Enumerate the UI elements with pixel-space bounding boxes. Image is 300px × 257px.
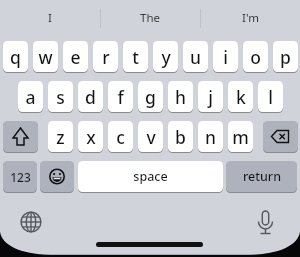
button[interactable]: return	[226, 161, 297, 192]
button[interactable]: I'm	[200, 0, 300, 35]
button[interactable]	[251, 207, 280, 238]
staticText: r	[102, 45, 110, 69]
staticText: j	[208, 85, 213, 109]
button[interactable]: o	[243, 41, 268, 72]
staticText: I'm	[242, 10, 259, 26]
button[interactable]: k	[228, 81, 253, 112]
staticText: i	[223, 45, 228, 69]
staticText: x	[86, 125, 96, 149]
button[interactable]: r	[93, 41, 118, 72]
staticText: c	[116, 125, 125, 149]
staticText: e	[70, 45, 81, 69]
staticText: a	[25, 85, 36, 109]
button[interactable]: c	[108, 121, 133, 152]
staticText: n	[205, 125, 216, 149]
button[interactable]: x	[78, 121, 103, 152]
button[interactable]: l	[258, 81, 283, 112]
button[interactable]: e	[63, 41, 88, 72]
button[interactable]	[17, 208, 45, 236]
staticText: y	[161, 45, 171, 69]
button[interactable]: b	[168, 121, 193, 152]
button[interactable]: v	[138, 121, 163, 152]
staticText: o	[250, 45, 261, 69]
button[interactable]: f	[108, 81, 133, 112]
staticText: b	[175, 125, 186, 149]
button[interactable]: g	[138, 81, 163, 112]
staticText: f	[117, 85, 124, 109]
staticText: space	[133, 168, 168, 185]
staticText: l	[268, 85, 273, 109]
button[interactable]: h	[168, 81, 193, 112]
button[interactable]: d	[78, 81, 103, 112]
button[interactable]: w	[33, 41, 58, 72]
button[interactable]: z	[48, 121, 73, 152]
button[interactable]: p	[273, 41, 298, 72]
button[interactable]: I	[0, 0, 100, 35]
staticText: I	[48, 10, 52, 26]
staticText: v	[146, 125, 156, 149]
staticText: z	[56, 125, 65, 149]
button[interactable]: u	[183, 41, 208, 72]
button[interactable]: y	[153, 41, 178, 72]
staticText: The	[140, 10, 160, 26]
button[interactable]: j	[198, 81, 223, 112]
staticText: k	[236, 85, 246, 109]
staticText: h	[175, 85, 186, 109]
button[interactable]: i	[213, 41, 238, 72]
button[interactable]: s	[48, 81, 73, 112]
button[interactable]	[263, 121, 298, 152]
button[interactable]: a	[18, 81, 43, 112]
button[interactable]: space	[78, 161, 223, 192]
staticText: t	[132, 45, 139, 69]
button[interactable]: q	[3, 41, 28, 72]
button[interactable]: The	[100, 0, 200, 35]
button[interactable]: t	[123, 41, 148, 72]
staticText: g	[145, 85, 156, 109]
staticText: s	[56, 85, 65, 109]
staticText: q	[10, 45, 21, 69]
button[interactable]	[3, 121, 38, 152]
staticText: u	[190, 45, 201, 69]
button[interactable]	[40, 161, 74, 192]
staticText: w	[38, 45, 53, 69]
button[interactable]: n	[198, 121, 223, 152]
button[interactable]: 123	[3, 161, 37, 192]
staticText: return	[243, 168, 281, 185]
staticText: 123	[10, 169, 31, 185]
staticText: d	[85, 85, 96, 109]
staticText: p	[280, 45, 291, 69]
staticText: m	[232, 125, 249, 149]
button[interactable]: m	[228, 121, 253, 152]
